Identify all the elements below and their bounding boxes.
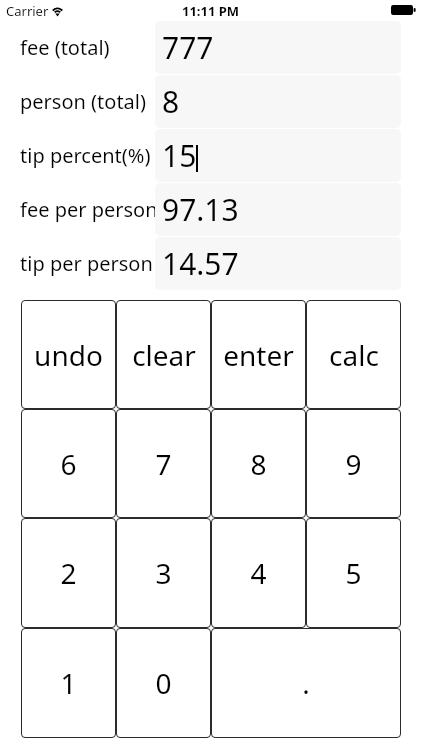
staticText: 8 xyxy=(250,445,267,483)
staticText: 11:11 PM xyxy=(182,2,240,20)
button[interactable]: 8 xyxy=(155,75,401,128)
staticText: calc xyxy=(329,336,379,374)
other: Wi-Fi xyxy=(51,5,65,16)
button[interactable]: 7 xyxy=(116,409,211,518)
staticText: 4 xyxy=(250,554,267,592)
staticText: 14.57 xyxy=(162,243,239,284)
button[interactable]: 6 xyxy=(21,409,116,518)
staticText: 2 xyxy=(60,554,77,592)
staticText: fee (total) xyxy=(20,34,110,61)
staticText: 15 xyxy=(162,135,197,176)
staticText: 97.13 xyxy=(162,189,239,230)
button[interactable]: 8 xyxy=(211,409,306,518)
button[interactable]: 0 xyxy=(116,628,211,738)
staticText: 5 xyxy=(345,554,362,592)
staticText: Carrier xyxy=(6,2,49,20)
staticText: 8 xyxy=(162,81,180,122)
button[interactable]: 14.57 xyxy=(155,237,401,290)
button[interactable]: 2 xyxy=(21,518,116,628)
button[interactable]: calc xyxy=(306,300,401,409)
staticText: 1 xyxy=(60,664,77,702)
staticText: enter xyxy=(223,336,294,374)
staticText: 6 xyxy=(60,445,77,483)
button[interactable]: 15 xyxy=(155,129,401,182)
other: Battery full xyxy=(391,5,416,16)
staticText: . xyxy=(302,664,310,702)
button[interactable]: 1 xyxy=(21,628,116,738)
staticText: undo xyxy=(34,336,103,374)
button[interactable]: 97.13 xyxy=(155,183,401,236)
button[interactable]: . xyxy=(211,628,401,738)
staticText: 0 xyxy=(155,664,172,702)
staticText: 9 xyxy=(345,445,362,483)
staticText: person (total) xyxy=(20,88,146,115)
staticText: clear xyxy=(132,336,196,374)
staticText: tip percent(%) xyxy=(20,142,151,169)
button[interactable]: 5 xyxy=(306,518,401,628)
staticText: 3 xyxy=(155,554,172,592)
staticText: 777 xyxy=(162,27,214,68)
button[interactable]: 777 xyxy=(155,21,401,74)
button[interactable]: enter xyxy=(211,300,306,409)
button[interactable]: 3 xyxy=(116,518,211,628)
staticText: 7 xyxy=(155,445,172,483)
button[interactable]: undo xyxy=(21,300,116,409)
staticText: fee per person xyxy=(20,196,158,223)
button[interactable]: clear xyxy=(116,300,211,409)
button[interactable]: 4 xyxy=(211,518,306,628)
button[interactable]: 9 xyxy=(306,409,401,518)
staticText: tip per person xyxy=(20,250,153,277)
